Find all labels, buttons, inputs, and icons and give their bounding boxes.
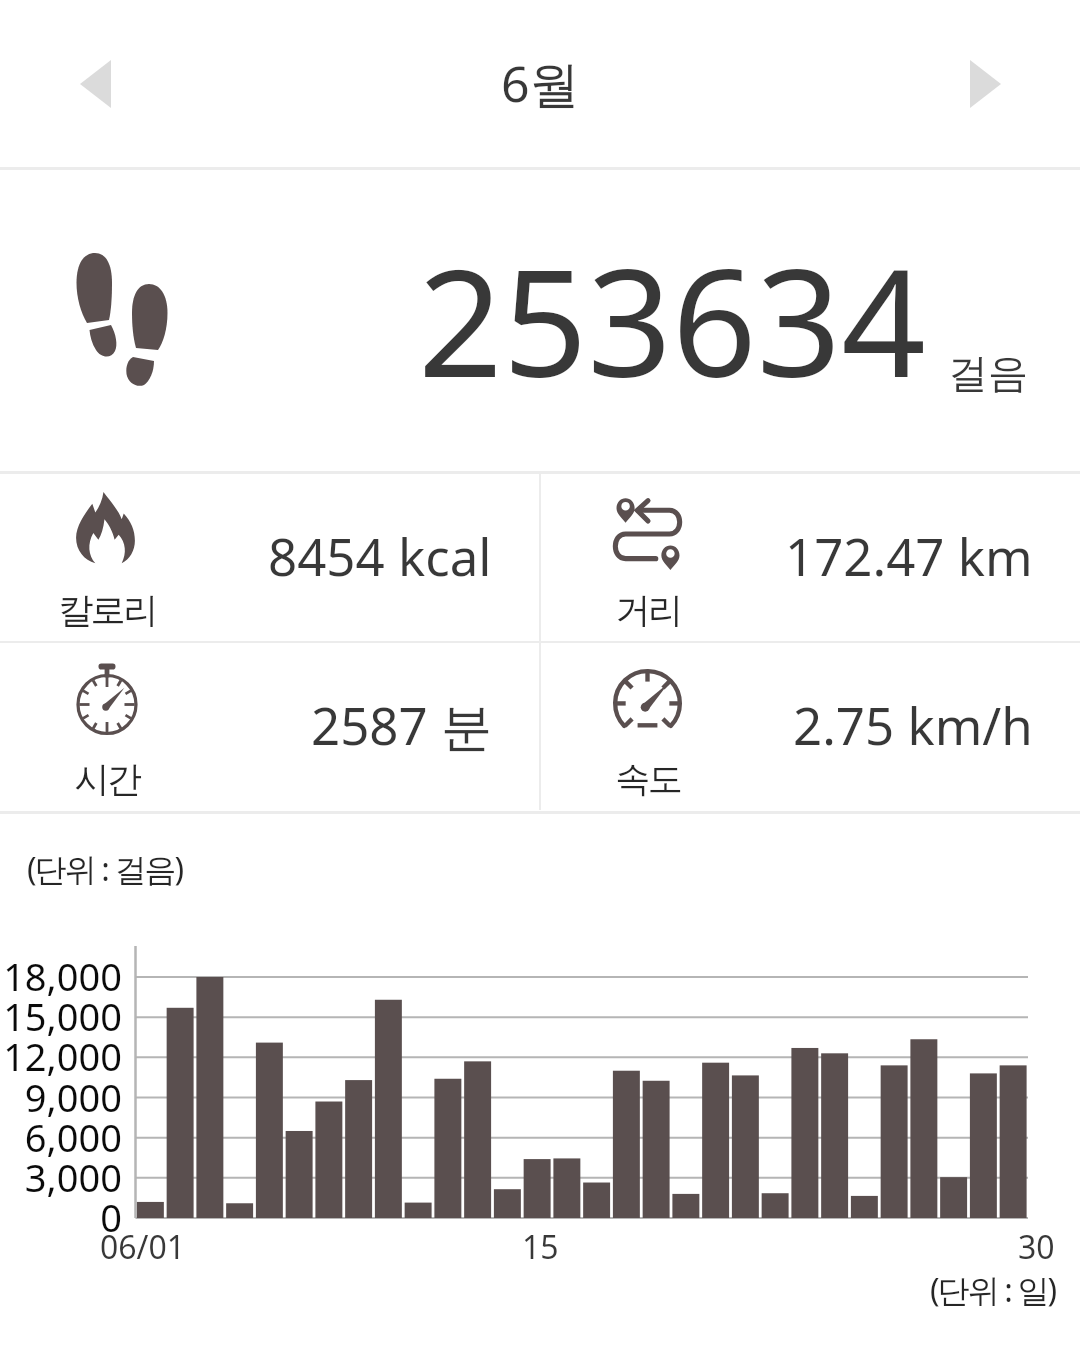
- staticText: 2587 분: [311, 690, 492, 760]
- staticText: 30: [1018, 1225, 1055, 1269]
- staticText: 6월: [501, 49, 580, 117]
- button[interactable]: Next month: [942, 41, 1028, 127]
- button[interactable]: Previous month: [52, 41, 138, 127]
- staticText: 칼로리: [17, 588, 197, 632]
- staticText: 0: [0, 1191, 122, 1243]
- button[interactable]: 시간: [0, 643, 539, 810]
- staticText: 속도: [558, 757, 738, 801]
- staticText: 거리: [558, 588, 738, 632]
- staticText: (단위 : 걸음): [27, 847, 183, 891]
- staticText: 3,000: [0, 1151, 122, 1203]
- button[interactable]: 거리: [541, 474, 1080, 641]
- staticText: (단위 : 일): [930, 1268, 1056, 1312]
- staticText: 18,000: [0, 950, 122, 1002]
- button[interactable]: 속도: [541, 643, 1080, 810]
- staticText: 9,000: [0, 1071, 122, 1123]
- staticText: 시간: [17, 757, 197, 801]
- staticText: 6,000: [0, 1111, 122, 1163]
- staticText: 걸음: [948, 348, 1028, 398]
- button[interactable]: Daily step chart for June: [0, 814, 1080, 1351]
- button[interactable]: 253634: [0, 170, 1080, 471]
- staticText: 06/01: [100, 1225, 186, 1269]
- staticText: 15,000: [0, 990, 122, 1042]
- staticText: 253634: [418, 219, 926, 421]
- staticText: 172.47 km: [785, 521, 1033, 590]
- staticText: 12,000: [0, 1030, 122, 1082]
- staticText: 8454 kcal: [268, 521, 492, 590]
- staticText: 15: [522, 1225, 559, 1269]
- button[interactable]: 칼로리: [0, 474, 539, 641]
- staticText: 2.75 km/h: [793, 690, 1033, 759]
